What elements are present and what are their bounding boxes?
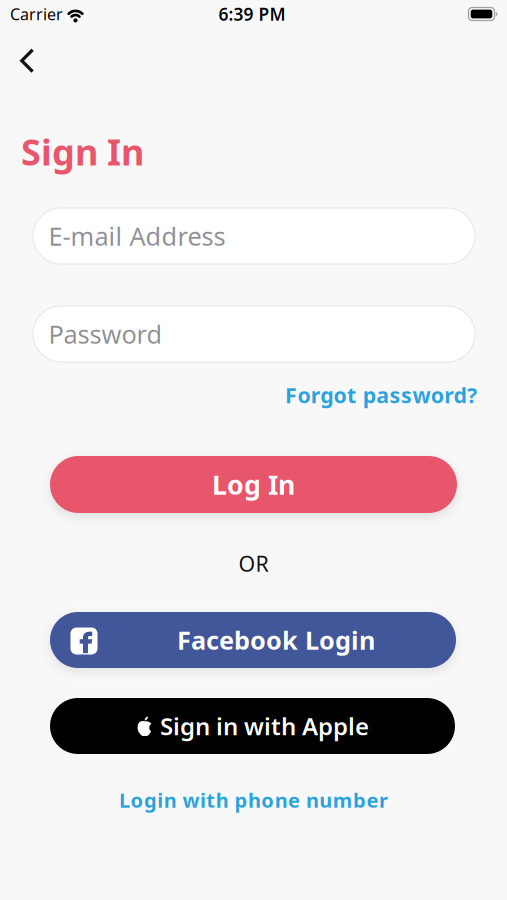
staticText: Carrier — [10, 3, 63, 25]
staticText: Forgot password? — [285, 381, 477, 409]
staticText: OR — [238, 549, 268, 578]
staticText: Facebook Login — [177, 623, 375, 657]
staticText: Sign In — [21, 128, 144, 175]
button[interactable]: Sign in with Apple — [50, 698, 455, 754]
button[interactable]: Login with phone number — [119, 787, 388, 813]
staticText: Log In — [212, 467, 295, 502]
button[interactable]: Forgot password? — [285, 381, 477, 409]
staticText: Sign in with Apple — [160, 710, 369, 742]
staticText: Login with phone number — [119, 787, 388, 813]
button[interactable]: Back — [13, 43, 42, 77]
staticText: 6:39 PM — [218, 2, 285, 25]
button[interactable]: Log In — [50, 456, 457, 513]
button[interactable]: Facebook Login — [50, 612, 456, 668]
staticText: Password — [48, 317, 162, 351]
staticText: E-mail Address — [48, 219, 225, 253]
